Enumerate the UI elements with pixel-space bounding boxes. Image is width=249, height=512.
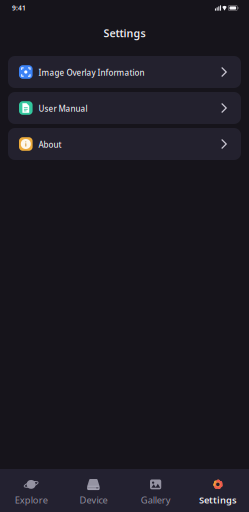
button[interactable]: Image Overlay Information (8, 56, 241, 88)
staticText: User Manual (38, 103, 87, 114)
staticText: Settings (199, 494, 237, 506)
button[interactable]: Explore (0, 470, 62, 511)
staticText: Settings (103, 26, 145, 40)
button[interactable]: User Manual (8, 92, 241, 124)
staticText: Image Overlay Information (38, 67, 144, 78)
button[interactable]: About (8, 128, 241, 160)
button[interactable]: Gallery (124, 470, 187, 511)
staticText: Explore (15, 494, 48, 506)
staticText: Device (79, 494, 107, 506)
staticText: Gallery (141, 494, 171, 506)
button[interactable]: Device (62, 470, 124, 511)
button[interactable]: Settings (187, 470, 249, 511)
staticText: 9:41 (12, 4, 26, 12)
staticText: About (38, 139, 61, 150)
